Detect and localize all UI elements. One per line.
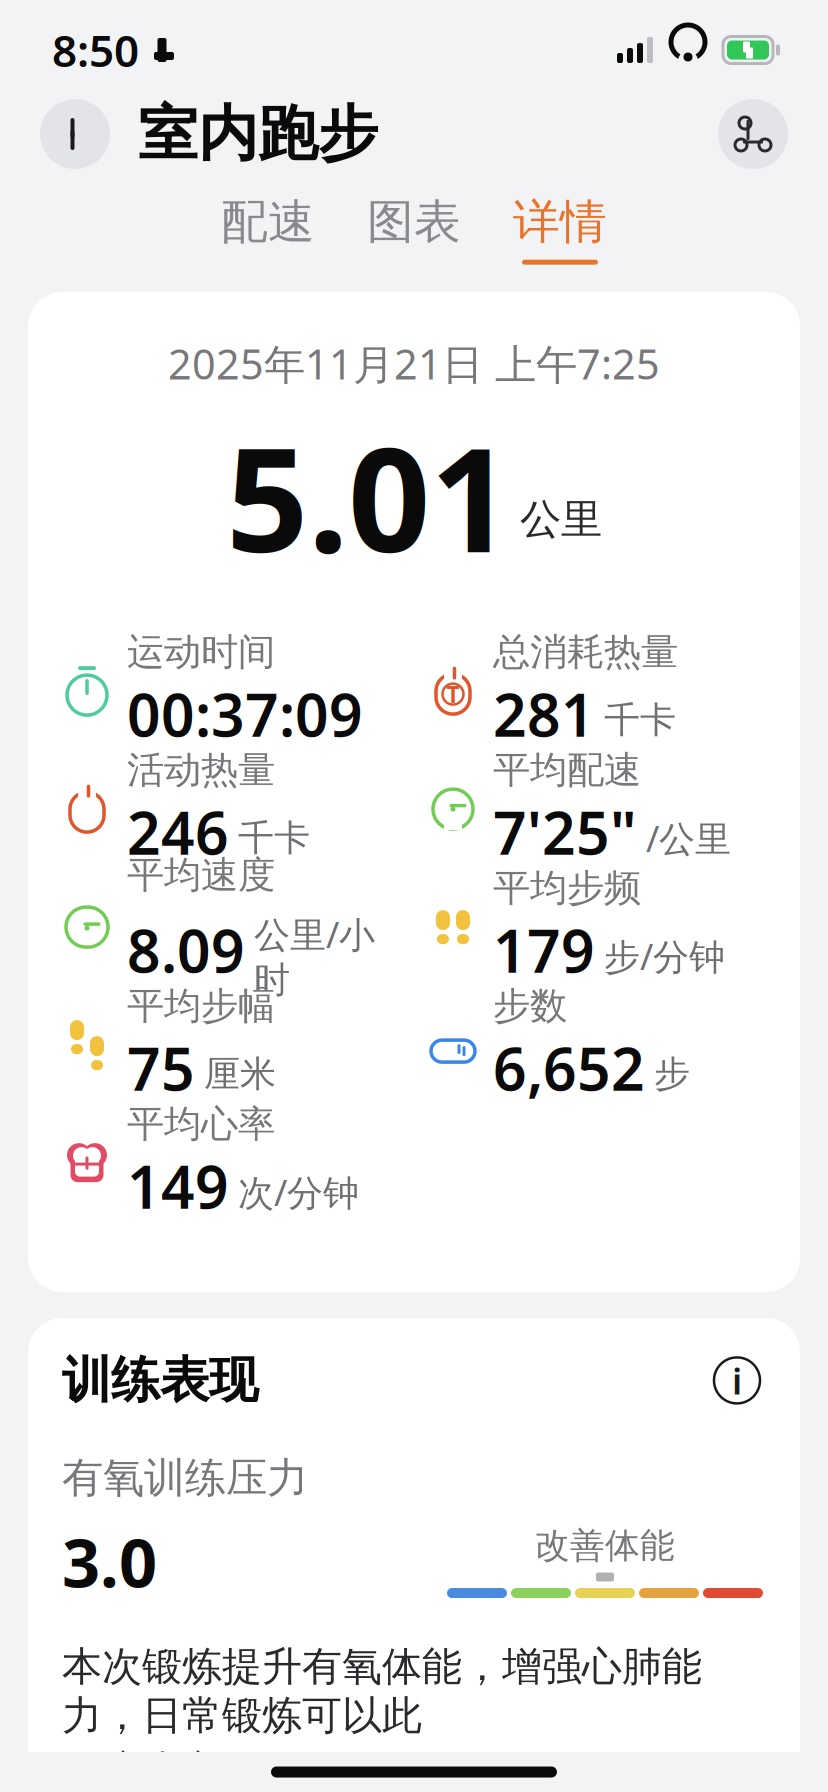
staticText: 步数	[493, 983, 567, 1029]
button[interactable]: 详情	[507, 193, 613, 265]
staticText: 246	[127, 793, 229, 871]
staticText: 8.09	[127, 911, 245, 989]
staticText: 5.01	[226, 401, 512, 592]
staticText: 公里/小时	[254, 910, 375, 1002]
staticText: 00:37:09	[127, 675, 363, 753]
staticText: 厘米	[204, 1052, 276, 1096]
staticText: 步/分钟	[604, 932, 725, 980]
staticText: 室内跑步	[138, 97, 378, 171]
staticText: i	[732, 1356, 742, 1404]
staticText: 8:50	[52, 21, 139, 79]
staticText: 千卡	[238, 816, 310, 860]
staticText: 次/分钟	[238, 1168, 359, 1216]
staticText: 179	[493, 911, 595, 989]
button[interactable]: 返回	[40, 99, 110, 169]
button[interactable]: 图表	[361, 193, 467, 265]
staticText: 平均心率	[127, 1101, 275, 1147]
staticText: /公里	[646, 814, 731, 862]
staticText: 改善体能	[535, 1524, 675, 1567]
staticText: 本次锻炼提升有氧体能，增强心肺能力，日常锻炼可以此	[62, 1642, 702, 1740]
staticText: 6,652	[493, 1029, 645, 1107]
staticText: 平均速度	[127, 852, 275, 898]
button[interactable]: 分享	[718, 99, 788, 169]
staticText: 步	[654, 1052, 690, 1096]
staticText: 总消耗热量	[493, 629, 678, 675]
staticText: 运动时间	[127, 629, 275, 675]
staticText: 281	[493, 675, 595, 753]
staticText: 149	[127, 1147, 229, 1225]
staticText: 详情	[513, 193, 607, 251]
staticText: T	[446, 679, 459, 709]
staticText: 有氧训练压力	[62, 1453, 308, 1503]
staticText: 活动热量	[127, 747, 275, 793]
staticText: 7'25"	[493, 793, 637, 871]
staticText: 3.0	[62, 1517, 157, 1606]
staticText: 千卡	[604, 698, 676, 742]
staticText: 75	[127, 1029, 195, 1107]
staticText: 平均步幅	[127, 983, 275, 1029]
staticText: 公里	[520, 494, 602, 545]
staticText: 图表	[367, 193, 461, 251]
staticText: 平均配速	[493, 747, 641, 793]
staticText: 强度为主。	[62, 1746, 262, 1792]
staticText: 平均步频	[493, 865, 641, 911]
staticText: 2025年11月21日 上午7:25	[168, 336, 660, 391]
staticText: 训练表现	[62, 1350, 258, 1411]
button[interactable]: 训练表现说明	[708, 1351, 766, 1409]
button[interactable]: 配速	[215, 193, 321, 265]
staticText: 配速	[221, 193, 315, 251]
